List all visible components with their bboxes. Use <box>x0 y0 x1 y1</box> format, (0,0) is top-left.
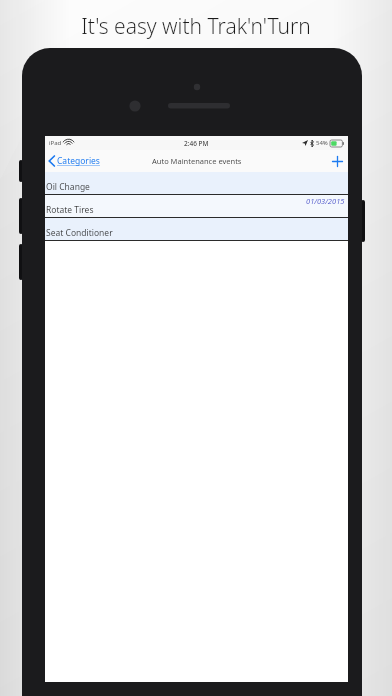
staticText: Seat Conditioner <box>46 227 113 239</box>
button[interactable]: Categories <box>45 152 104 170</box>
staticText: iPad <box>49 139 62 147</box>
button[interactable]: Oil Change <box>45 172 348 195</box>
button[interactable]: Add event <box>327 154 348 169</box>
staticText: Auto Maintenance events <box>152 156 242 166</box>
staticText: Categories <box>57 155 100 167</box>
staticText: Rotate Tires <box>46 204 94 216</box>
button[interactable]: 01/03/2015 <box>45 195 348 218</box>
staticText: It's easy with Trak'n'Turn <box>81 12 311 41</box>
staticText: 01/03/2015 <box>306 196 345 206</box>
staticText: 54% <box>316 139 328 147</box>
button[interactable]: Seat Conditioner <box>45 218 348 241</box>
staticText: 2:46 PM <box>184 139 209 148</box>
staticText: Oil Change <box>46 181 90 193</box>
